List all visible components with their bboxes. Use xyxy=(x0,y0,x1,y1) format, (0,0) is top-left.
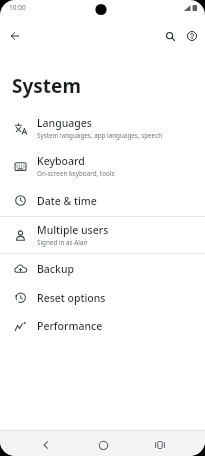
button[interactable]: Date & time xyxy=(0,185,205,216)
button[interactable] xyxy=(184,28,200,44)
staticText: Reset options xyxy=(37,291,106,305)
button[interactable] xyxy=(6,27,24,45)
button[interactable]: Performance xyxy=(0,312,205,340)
staticText: Multiple users xyxy=(37,223,109,237)
button[interactable]: Reset options xyxy=(0,283,205,312)
staticText: System languages, app languages, speech xyxy=(37,131,163,140)
button[interactable]: Multiple users xyxy=(0,217,205,253)
button[interactable]: Keyboard xyxy=(0,147,205,185)
staticText: Backup xyxy=(37,262,74,276)
button[interactable]: Backup xyxy=(0,254,205,283)
staticText: Performance xyxy=(37,319,103,333)
staticText: System xyxy=(12,73,81,99)
staticText: Languages xyxy=(37,116,92,130)
staticText: Signed in as Alan xyxy=(37,238,88,247)
button[interactable]: Languages xyxy=(0,109,205,147)
button[interactable] xyxy=(151,436,169,454)
staticText: On-screen keyboard, tools xyxy=(37,169,115,178)
staticText: Keyboard xyxy=(37,154,85,168)
staticText: Date & time xyxy=(37,194,97,208)
button[interactable] xyxy=(37,436,55,454)
button[interactable] xyxy=(162,28,178,44)
button[interactable] xyxy=(94,436,112,454)
staticText: 10:00 xyxy=(9,3,26,12)
